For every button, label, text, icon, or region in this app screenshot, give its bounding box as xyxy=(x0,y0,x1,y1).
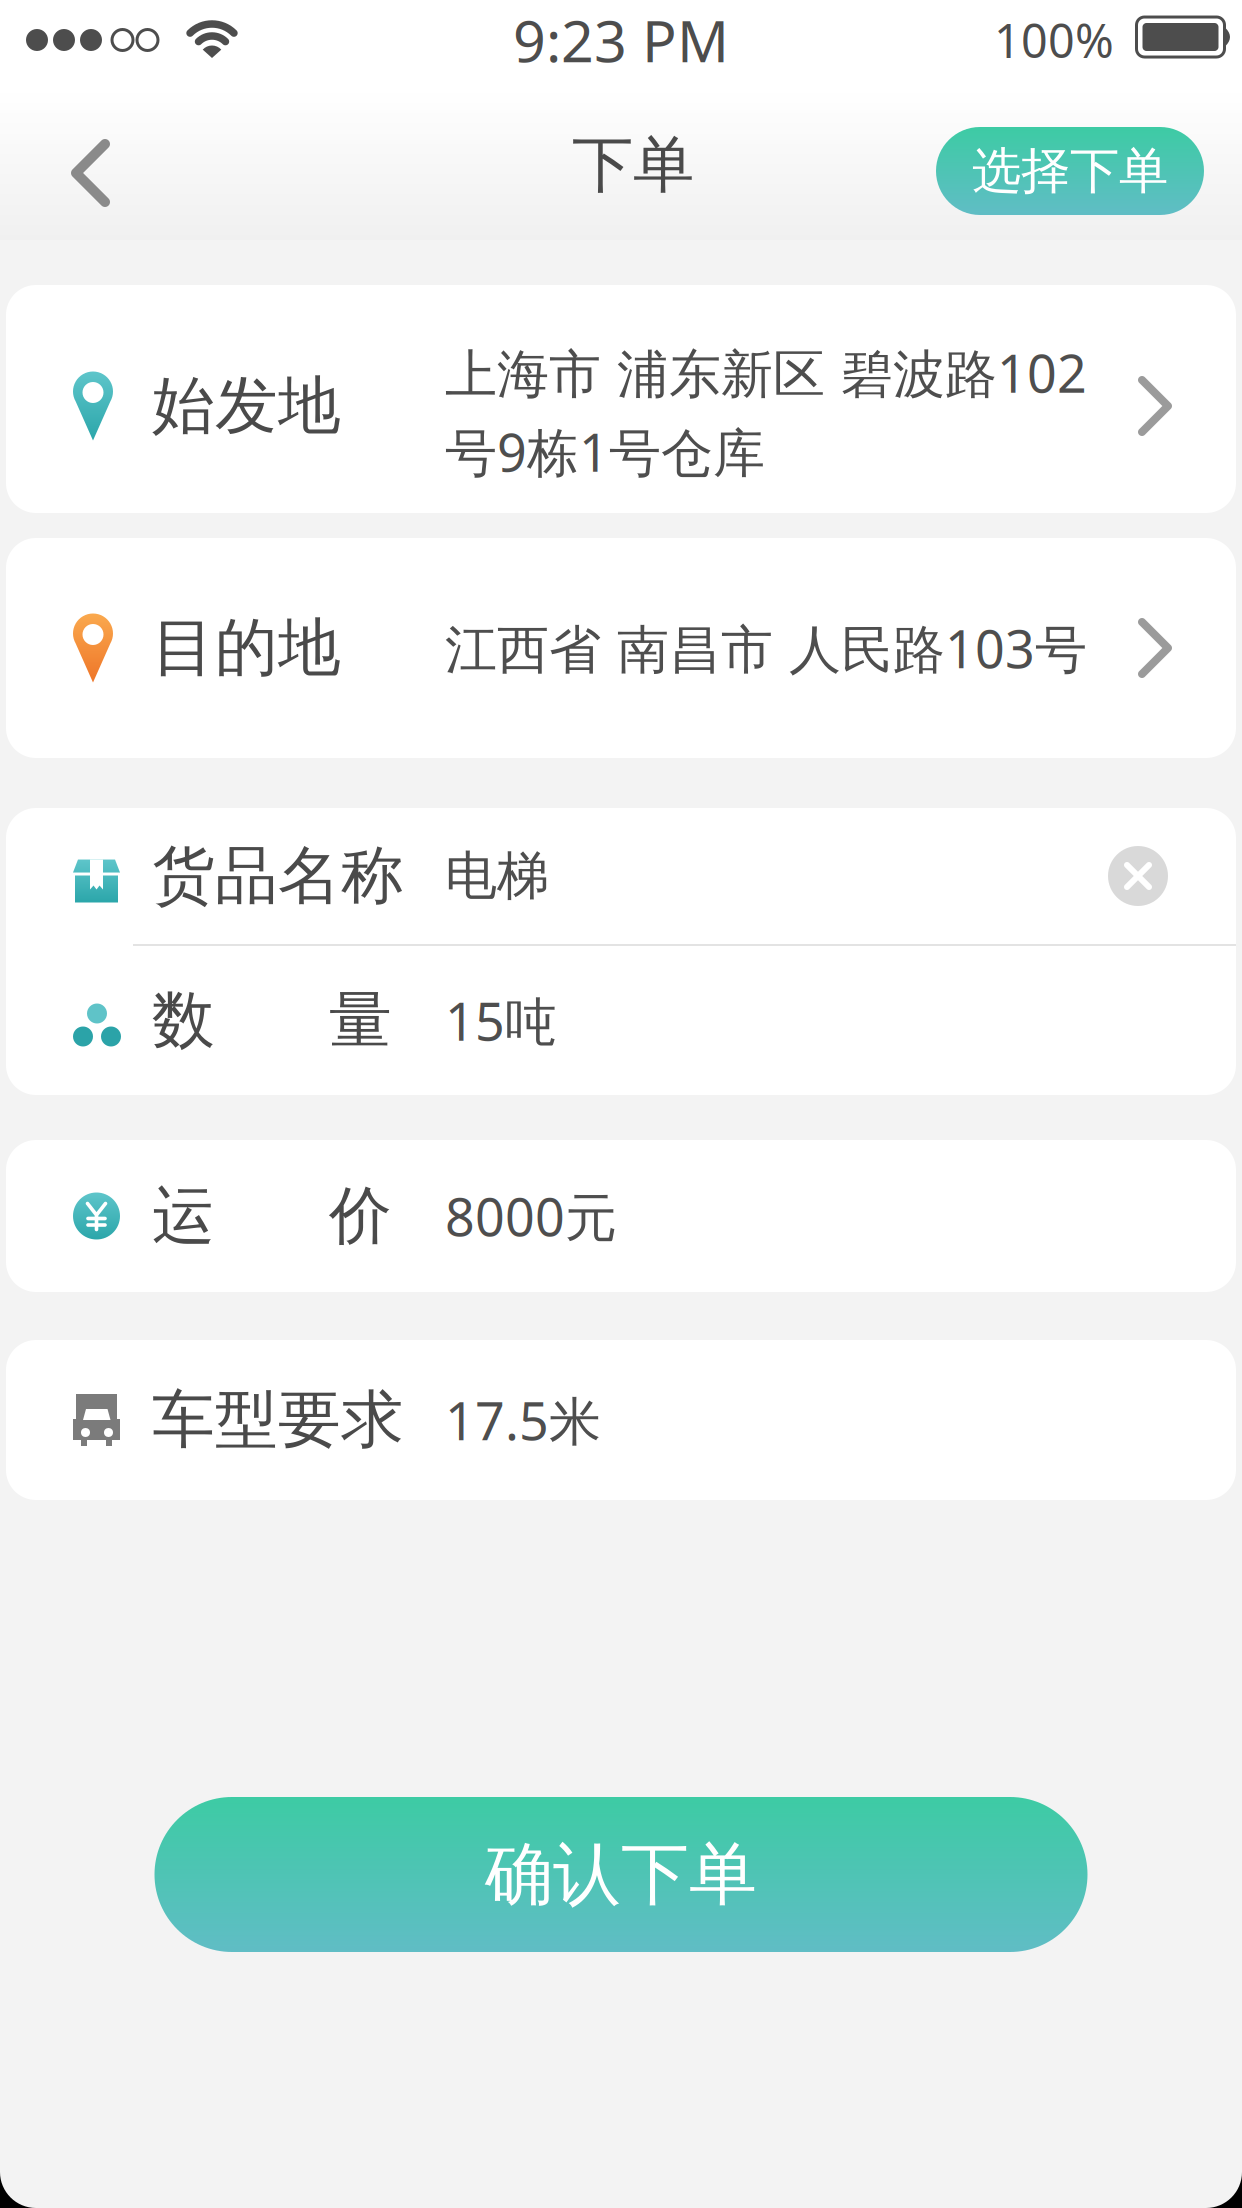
staticText: 选择下单 xyxy=(972,141,1168,201)
button[interactable]: 车型要求 xyxy=(6,1340,1236,1500)
staticText: 上海市 浦东新区 碧波路102号9栋1号仓库 xyxy=(445,338,1087,486)
staticText: 8000元 xyxy=(445,1181,617,1251)
staticText: 100% xyxy=(994,9,1114,71)
button[interactable]: 选择下单 xyxy=(936,127,1204,215)
button[interactable]: 始发地 xyxy=(6,285,1236,513)
staticText: 下单 xyxy=(572,127,694,203)
staticText: 车型要求 xyxy=(152,1381,404,1458)
staticText: 目的地 xyxy=(152,609,341,686)
staticText: 量 xyxy=(329,982,392,1059)
button[interactable]: Back xyxy=(72,140,112,206)
staticText: 17.5米 xyxy=(445,1385,601,1455)
button[interactable]: 运 xyxy=(6,1140,1236,1292)
button[interactable]: 数 xyxy=(6,946,1236,1095)
staticText: 江西省 南昌市 人民路103号 xyxy=(445,613,1087,683)
button[interactable]: Clear goods name xyxy=(1108,846,1168,906)
staticText: 确认下单 xyxy=(485,1833,757,1916)
staticText: 价 xyxy=(329,1177,392,1254)
button[interactable]: 货品名称 xyxy=(6,808,1236,944)
staticText: 运 xyxy=(152,1177,215,1254)
staticText: 15吨 xyxy=(445,986,557,1055)
button[interactable]: 确认下单 xyxy=(154,1797,1087,1952)
button[interactable]: 目的地 xyxy=(6,538,1236,758)
staticText: 电梯 xyxy=(445,844,549,908)
staticText: 数 xyxy=(152,982,215,1059)
staticText: 9:23 PM xyxy=(513,2,729,78)
staticText: 始发地 xyxy=(152,367,341,444)
staticText: 货品名称 xyxy=(152,837,404,914)
